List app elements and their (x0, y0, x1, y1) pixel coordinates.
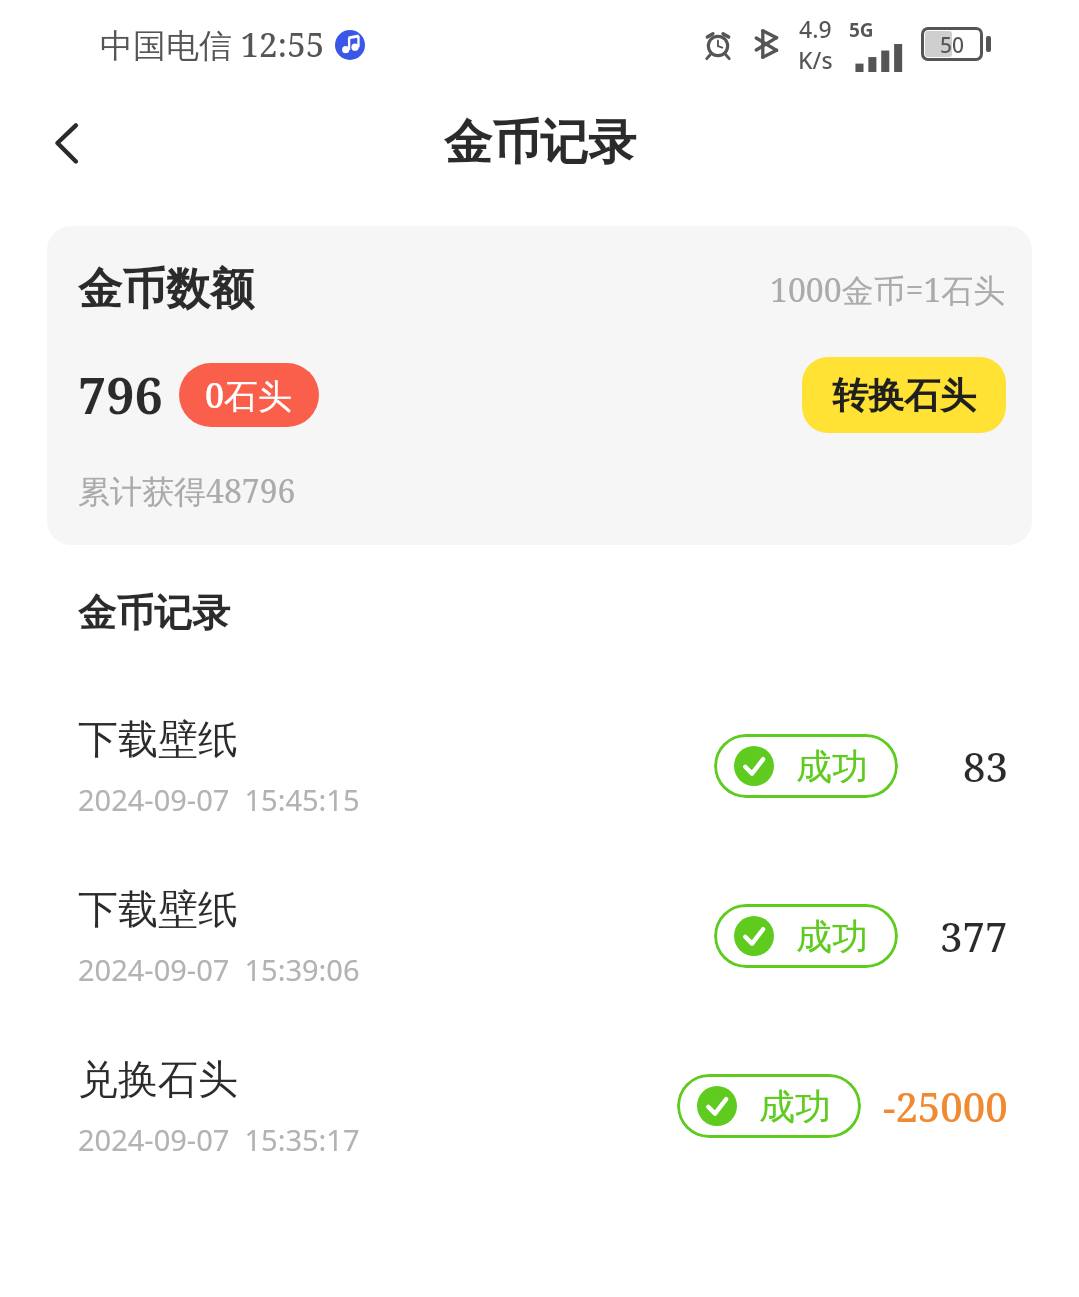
staticText: K/s (798, 44, 833, 75)
button[interactable]: 下载壁纸 (0, 851, 1079, 1021)
button[interactable]: 成功 (677, 1074, 861, 1138)
button[interactable]: 成功 (714, 904, 898, 968)
staticText: -25000 (883, 1079, 1008, 1133)
staticText: 2024-09-07 15:35:17 (78, 1120, 360, 1159)
button[interactable]: 成功 (714, 734, 898, 798)
staticText: 下载壁纸 (78, 884, 238, 934)
button[interactable]: 下载壁纸 (0, 681, 1079, 851)
button[interactable]: 转换石头 (802, 357, 1006, 433)
staticText: 796 (78, 361, 163, 429)
button[interactable]: 0石头 (179, 363, 319, 427)
staticText: 2024-09-07 15:39:06 (78, 950, 360, 989)
staticText: 2024-09-07 15:45:15 (78, 780, 360, 819)
staticText: 中国电信 12:55 (100, 22, 325, 67)
button[interactable]: 兑换石头 (0, 1021, 1079, 1191)
staticText: 金币数额 (78, 262, 254, 317)
staticText: 转换石头 (832, 373, 976, 418)
staticText: 下载壁纸 (78, 714, 238, 764)
staticText: 成功 (796, 744, 868, 789)
staticText: 成功 (759, 1084, 831, 1129)
staticText: 金币记录 (444, 113, 636, 173)
staticText: 0石头 (205, 372, 293, 418)
staticText: 83 (963, 739, 1008, 793)
staticText: 50 (940, 31, 965, 57)
staticText: 兑换石头 (78, 1054, 238, 1104)
staticText: 成功 (796, 914, 868, 959)
staticText: 4.9 (799, 13, 832, 44)
staticText: 1000金币=1石头 (770, 268, 1006, 312)
staticText: 377 (940, 909, 1008, 963)
button[interactable]: Back (26, 101, 110, 185)
staticText: 5G (849, 17, 874, 43)
staticText: 金币记录 (78, 589, 230, 637)
staticText: 累计获得48796 (78, 469, 296, 513)
